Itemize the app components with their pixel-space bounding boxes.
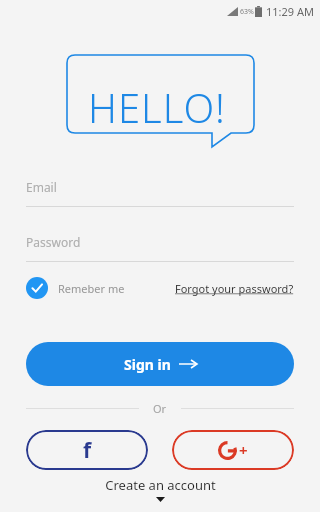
staticText: Or <box>153 401 167 416</box>
staticText: 63% <box>240 7 254 17</box>
staticText: Sign in <box>124 355 171 374</box>
button[interactable]: Password <box>26 229 294 262</box>
button[interactable]: Sign in with Google Plus <box>172 430 294 470</box>
staticText: Email <box>26 179 57 195</box>
staticText: Forgot your password? <box>175 281 294 296</box>
staticText: Remeber me <box>58 281 125 296</box>
staticText: HELLO! <box>88 80 226 134</box>
button[interactable]: Create an account <box>0 476 320 502</box>
button[interactable]: Remeber me <box>26 277 125 299</box>
staticText: Password <box>26 234 81 250</box>
button[interactable]: Email <box>26 174 294 207</box>
button[interactable]: Forgot your password? <box>175 281 294 296</box>
staticText: 11:29 AM <box>266 4 314 19</box>
staticText: f <box>83 436 92 465</box>
button[interactable]: Sign in <box>26 342 294 386</box>
staticText: + <box>239 440 248 460</box>
button[interactable]: Sign in with Facebook <box>26 430 148 470</box>
staticText: Create an account <box>105 476 216 494</box>
